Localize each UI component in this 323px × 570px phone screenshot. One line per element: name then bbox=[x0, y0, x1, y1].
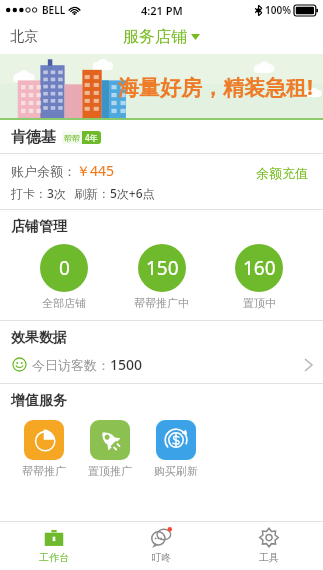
staticText: 今日访客数： bbox=[32, 357, 110, 373]
button[interactable]: 海量好房，精装急租! bbox=[0, 54, 323, 120]
staticText: 帮帮 bbox=[64, 133, 80, 143]
staticText: 置顶中 bbox=[243, 296, 276, 310]
staticText: 肯德基 bbox=[11, 128, 56, 147]
staticText: 店铺管理 bbox=[11, 218, 67, 236]
staticText: 北京 bbox=[10, 28, 38, 46]
staticText: 刷新： bbox=[74, 186, 110, 201]
staticText: 全部店铺 bbox=[42, 296, 86, 310]
button[interactable]: 置顶推广 bbox=[86, 418, 134, 480]
button[interactable]: 帮帮推广 bbox=[20, 418, 68, 480]
button[interactable]: 余额充值 bbox=[252, 161, 312, 185]
staticText: 打卡： bbox=[11, 186, 47, 201]
staticText: 工作台 bbox=[39, 551, 69, 564]
staticText: 海量好房，精装急租! bbox=[118, 73, 313, 102]
staticText: 3次 bbox=[47, 185, 66, 201]
staticText: 购买刷新 bbox=[154, 464, 198, 478]
staticText: 置顶推广 bbox=[88, 464, 132, 478]
button[interactable]: 北京 bbox=[0, 23, 48, 51]
staticText: 服务店铺 bbox=[123, 27, 187, 47]
staticText: 4:21 PM bbox=[141, 3, 183, 18]
button[interactable]: 160 bbox=[229, 242, 289, 312]
staticText: BELL bbox=[42, 3, 66, 17]
staticText: 5次+6点 bbox=[110, 185, 155, 201]
button[interactable]: 0 bbox=[34, 242, 94, 312]
staticText: ￥445 bbox=[76, 161, 115, 180]
staticText: 160 bbox=[243, 255, 276, 281]
button[interactable]: 叮咚 bbox=[107, 522, 215, 570]
staticText: 账户余额： bbox=[11, 163, 76, 179]
staticText: 1500 bbox=[110, 355, 143, 374]
staticText: 工具 bbox=[259, 551, 279, 564]
staticText: 效果数据 bbox=[11, 329, 67, 347]
staticText: 100% bbox=[265, 3, 291, 17]
staticText: 帮帮推广中 bbox=[134, 296, 189, 310]
staticText: 0 bbox=[59, 255, 70, 281]
button[interactable]: 服务店铺 bbox=[115, 23, 208, 51]
staticText: 余额充值 bbox=[256, 165, 308, 181]
button[interactable]: 购买刷新 bbox=[152, 418, 200, 480]
button[interactable]: 150 bbox=[128, 242, 195, 312]
button[interactable]: 工具 bbox=[215, 522, 323, 570]
staticText: 叮咚 bbox=[151, 551, 171, 564]
button[interactable]: 今日访客数： bbox=[0, 347, 323, 383]
staticText: 4年 bbox=[85, 132, 98, 143]
staticText: 150 bbox=[146, 255, 179, 281]
staticText: 增值服务 bbox=[11, 392, 67, 410]
button[interactable]: 工作台 bbox=[0, 522, 107, 570]
staticText: 帮帮推广 bbox=[22, 464, 66, 478]
